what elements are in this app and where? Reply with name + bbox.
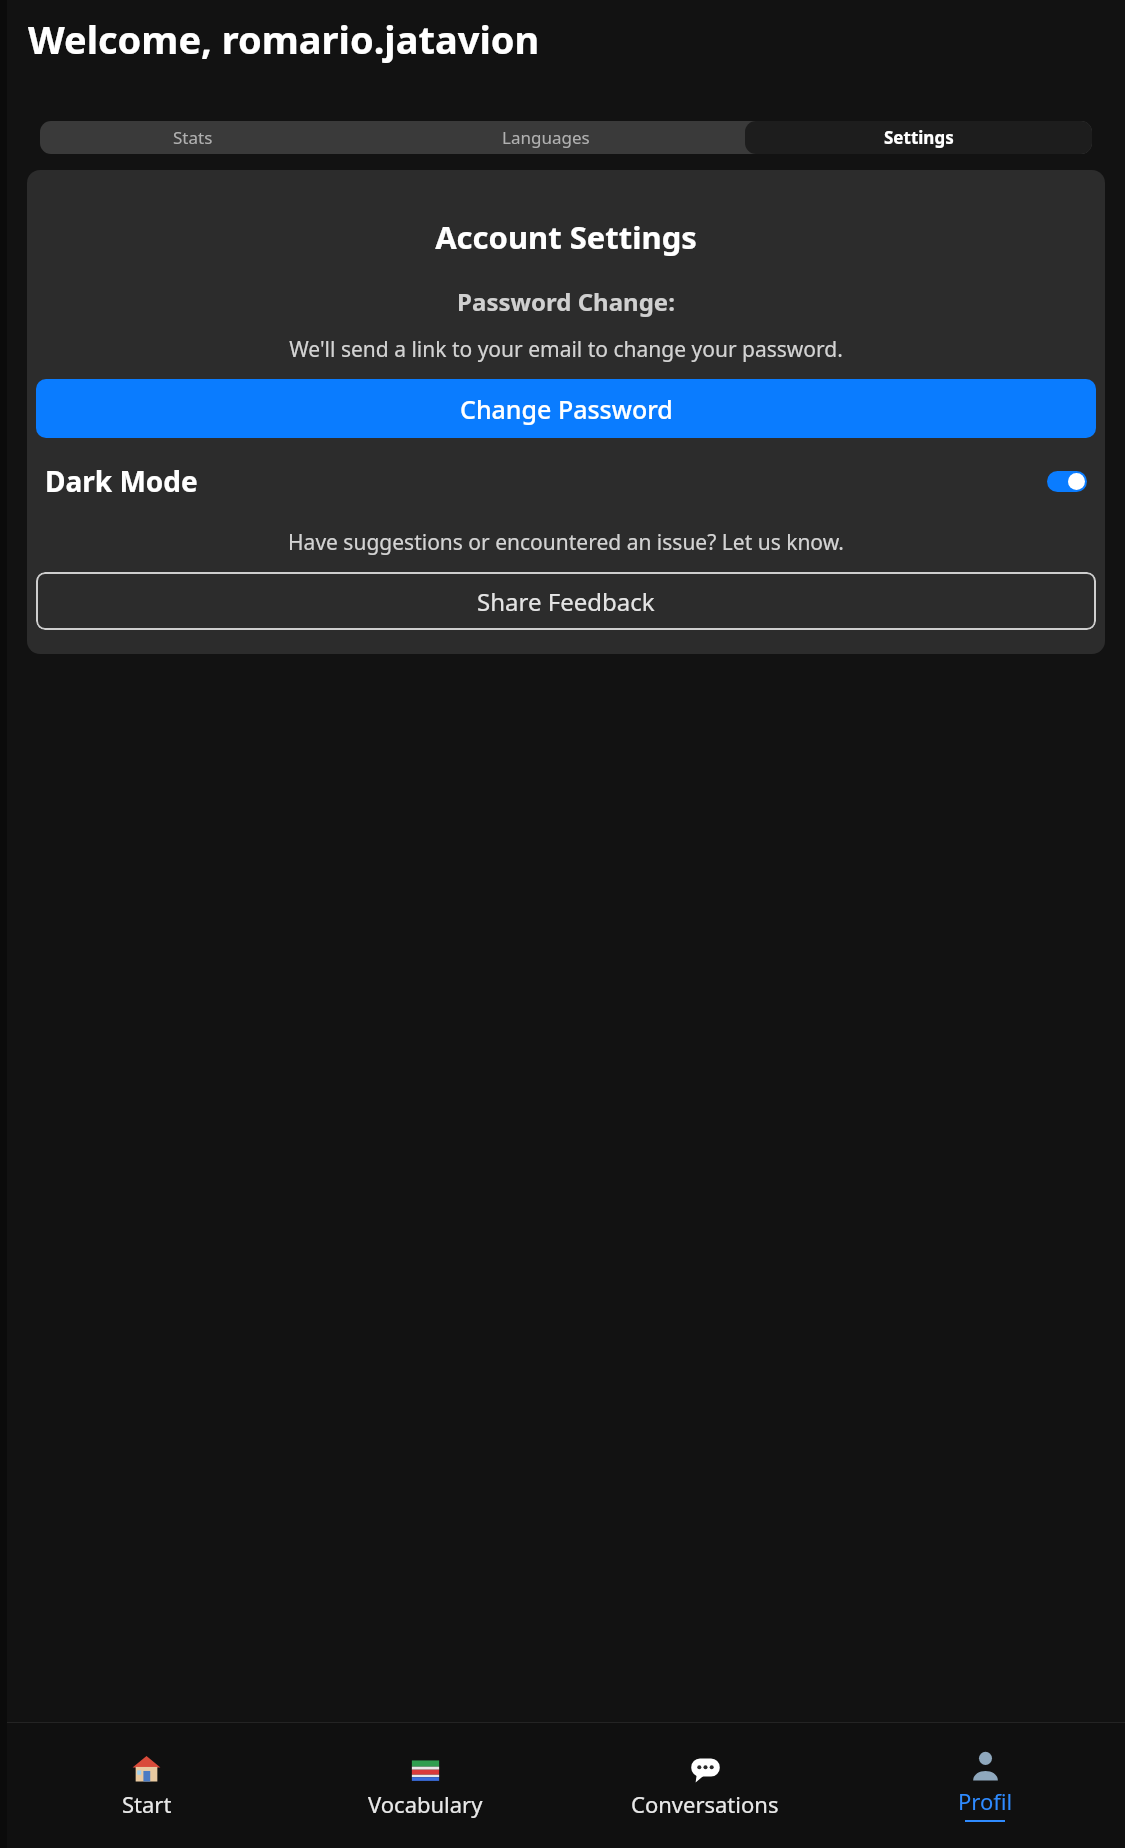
button[interactable]: Dark Mode toggle (1047, 471, 1087, 492)
staticText: Share Feedback (477, 585, 655, 618)
staticText: Start (122, 1789, 172, 1819)
staticText: Change Password (460, 392, 673, 426)
staticText: Languages (502, 126, 590, 149)
staticText: Profil (958, 1786, 1013, 1816)
button[interactable]: Change Password (36, 379, 1096, 438)
staticText: Stats (173, 126, 213, 149)
staticText: Have suggestions or encountered an issue… (38, 528, 1094, 557)
staticText: Account Settings (36, 216, 1096, 258)
button[interactable]: Dark Mode (45, 462, 1087, 500)
staticText: Dark Mode (45, 462, 198, 500)
staticText: Vocabulary (368, 1789, 483, 1819)
staticText: Password Change: (36, 285, 1096, 318)
button[interactable]: Languages (346, 121, 745, 154)
button[interactable]: Share Feedback (36, 572, 1096, 630)
staticText: We'll send a link to your email to chang… (41, 335, 1091, 364)
staticText: Settings (884, 126, 954, 149)
button[interactable]: Conversations (565, 1723, 845, 1848)
staticText: Welcome, romario.jatavion (28, 13, 540, 65)
staticText: Conversations (631, 1789, 779, 1819)
button[interactable]: Profil (845, 1723, 1125, 1848)
button[interactable]: Start (7, 1723, 286, 1848)
button[interactable]: Stats (40, 121, 346, 154)
button[interactable]: Vocabulary (286, 1723, 565, 1848)
button[interactable]: Settings (745, 121, 1092, 154)
